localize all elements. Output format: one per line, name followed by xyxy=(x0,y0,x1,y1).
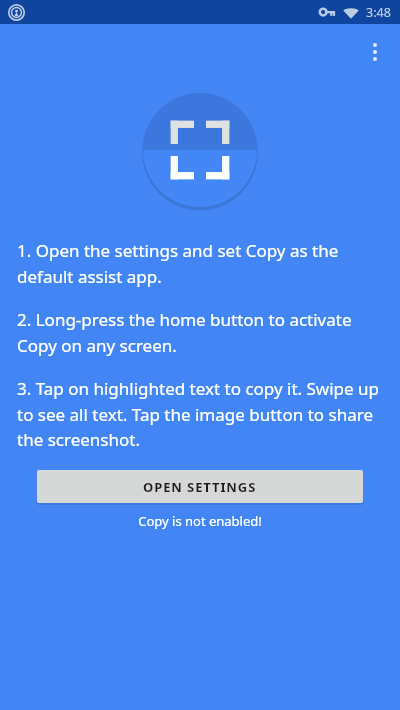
button[interactable]: OPEN SETTINGS xyxy=(37,470,363,503)
button[interactable]: More options xyxy=(355,32,395,72)
staticText: OPEN SETTINGS xyxy=(143,478,257,496)
staticText: 1. Open the settings and set Copy as the… xyxy=(17,239,383,288)
staticText: 3. Tap on highlighted text to copy it. S… xyxy=(17,377,383,451)
staticText: 2. Long-press the home button to activat… xyxy=(17,308,383,357)
staticText: 3:48 xyxy=(366,4,391,21)
staticText: Copy is not enabled! xyxy=(0,512,400,530)
